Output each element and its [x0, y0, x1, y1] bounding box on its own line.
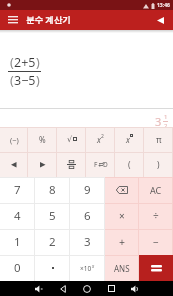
staticText: D: [103, 160, 108, 169]
button[interactable]: [28, 152, 57, 177]
button[interactable]: +: [105, 229, 139, 255]
button[interactable]: 9: [70, 177, 105, 203]
button[interactable]: F: [86, 152, 115, 177]
button[interactable]: √: [57, 127, 86, 152]
staticText: 13:46: [157, 2, 170, 9]
staticText: ): [36, 54, 40, 71]
staticText: (: [10, 72, 14, 89]
staticText: 3−5: [14, 72, 36, 89]
button[interactable]: 3: [70, 229, 105, 255]
button[interactable]: (−): [0, 127, 28, 152]
staticText: −: [153, 235, 159, 249]
button[interactable]: 7: [0, 177, 35, 203]
staticText: x: [97, 134, 101, 145]
button[interactable]: 5: [35, 203, 70, 229]
staticText: AC: [150, 184, 162, 196]
staticText: 7: [14, 182, 21, 198]
button[interactable]: ): [144, 152, 173, 177]
staticText: ÷: [153, 209, 159, 223]
button[interactable]: [139, 255, 173, 281]
button[interactable]: 8: [35, 177, 70, 203]
button[interactable]: [153, 13, 167, 27]
button[interactable]: [99, 281, 123, 296]
button[interactable]: [0, 10, 26, 30]
button[interactable]: 6: [70, 203, 105, 229]
button[interactable]: [123, 281, 147, 296]
staticText: 5: [49, 208, 56, 224]
button[interactable]: 1: [0, 229, 35, 255]
staticText: %: [39, 134, 46, 145]
button[interactable]: ÷: [139, 203, 173, 229]
staticText: 3: [84, 234, 91, 250]
staticText: 0: [14, 260, 21, 276]
staticText: 2: [49, 234, 56, 250]
staticText: 2+5: [14, 54, 36, 71]
staticText: ): [157, 159, 160, 171]
button[interactable]: [35, 255, 70, 281]
staticText: 6: [84, 208, 91, 224]
staticText: F: [94, 160, 98, 169]
staticText: 2: [164, 122, 168, 130]
staticText: ×10: [80, 264, 92, 273]
button[interactable]: 4: [0, 203, 35, 229]
button[interactable]: x: [86, 127, 115, 152]
button[interactable]: 2: [35, 229, 70, 255]
staticText: 4: [14, 208, 21, 224]
staticText: (: [10, 54, 14, 71]
button[interactable]: [51, 281, 75, 296]
staticText: (: [128, 159, 131, 171]
button[interactable]: π: [144, 127, 173, 152]
button[interactable]: ANS: [105, 255, 139, 281]
staticText: ×: [119, 209, 125, 223]
button[interactable]: 0: [0, 255, 35, 281]
staticText: ): [36, 72, 40, 89]
staticText: 9: [84, 182, 91, 198]
button[interactable]: [0, 152, 28, 177]
button[interactable]: −: [139, 229, 173, 255]
button[interactable]: %: [28, 127, 57, 152]
staticText: √: [67, 135, 73, 144]
staticText: 1: [14, 234, 21, 250]
button[interactable]: [27, 281, 51, 296]
button[interactable]: ×10: [70, 255, 105, 281]
button[interactable]: AC: [139, 177, 173, 203]
staticText: x: [92, 263, 95, 269]
button[interactable]: [105, 177, 139, 203]
button[interactable]: [57, 152, 86, 177]
staticText: x: [126, 134, 130, 145]
button[interactable]: [75, 281, 99, 296]
staticText: 3: [155, 114, 162, 129]
staticText: 1: [164, 113, 168, 121]
staticText: +: [119, 235, 126, 249]
staticText: (−): [10, 135, 19, 145]
staticText: ANS: [114, 263, 130, 274]
button[interactable]: x: [115, 127, 144, 152]
staticText: 2: [101, 133, 104, 140]
staticText: π: [156, 134, 162, 146]
staticText: 8: [49, 182, 56, 198]
button[interactable]: (: [115, 152, 144, 177]
button[interactable]: ×: [105, 203, 139, 229]
staticText: 분수 계산기: [26, 14, 71, 26]
